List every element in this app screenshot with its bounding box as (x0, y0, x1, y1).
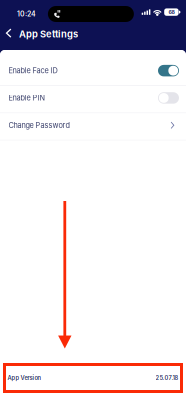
staticText: Enable Face ID (8, 66, 57, 75)
staticText: 10:24 (17, 10, 36, 18)
staticText: 68 (168, 9, 174, 15)
staticText: App Version (7, 374, 41, 381)
button[interactable]: Back (0, 23, 19, 45)
staticText: Change Password (8, 121, 69, 130)
button[interactable]: Enable PIN (0, 86, 186, 113)
button[interactable]: Change Password (0, 113, 186, 141)
staticText: App Settings (19, 28, 78, 40)
button[interactable]: Enable Face ID (0, 59, 186, 86)
staticText: 25.07.18 (155, 374, 178, 381)
staticText: Enable PIN (8, 93, 45, 102)
